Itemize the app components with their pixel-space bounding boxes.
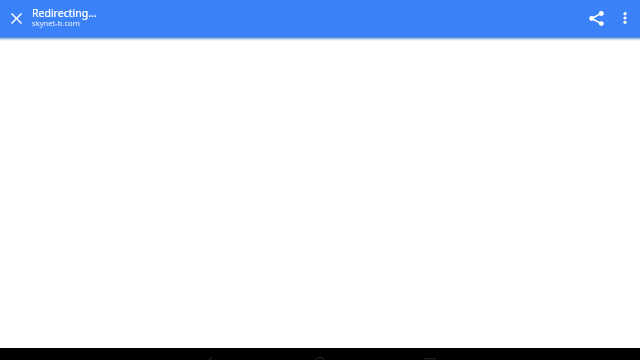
button[interactable]: More options	[609, 2, 640, 34]
staticText: skynet-b.com	[32, 18, 572, 28]
button[interactable]: Home	[289, 348, 351, 360]
button[interactable]: Recent apps	[399, 348, 461, 360]
button[interactable]: Share	[580, 2, 612, 34]
button[interactable]: Redirecting…	[32, 0, 572, 37]
button[interactable]: Close	[0, 2, 32, 34]
staticText: Redirecting…	[32, 6, 572, 20]
